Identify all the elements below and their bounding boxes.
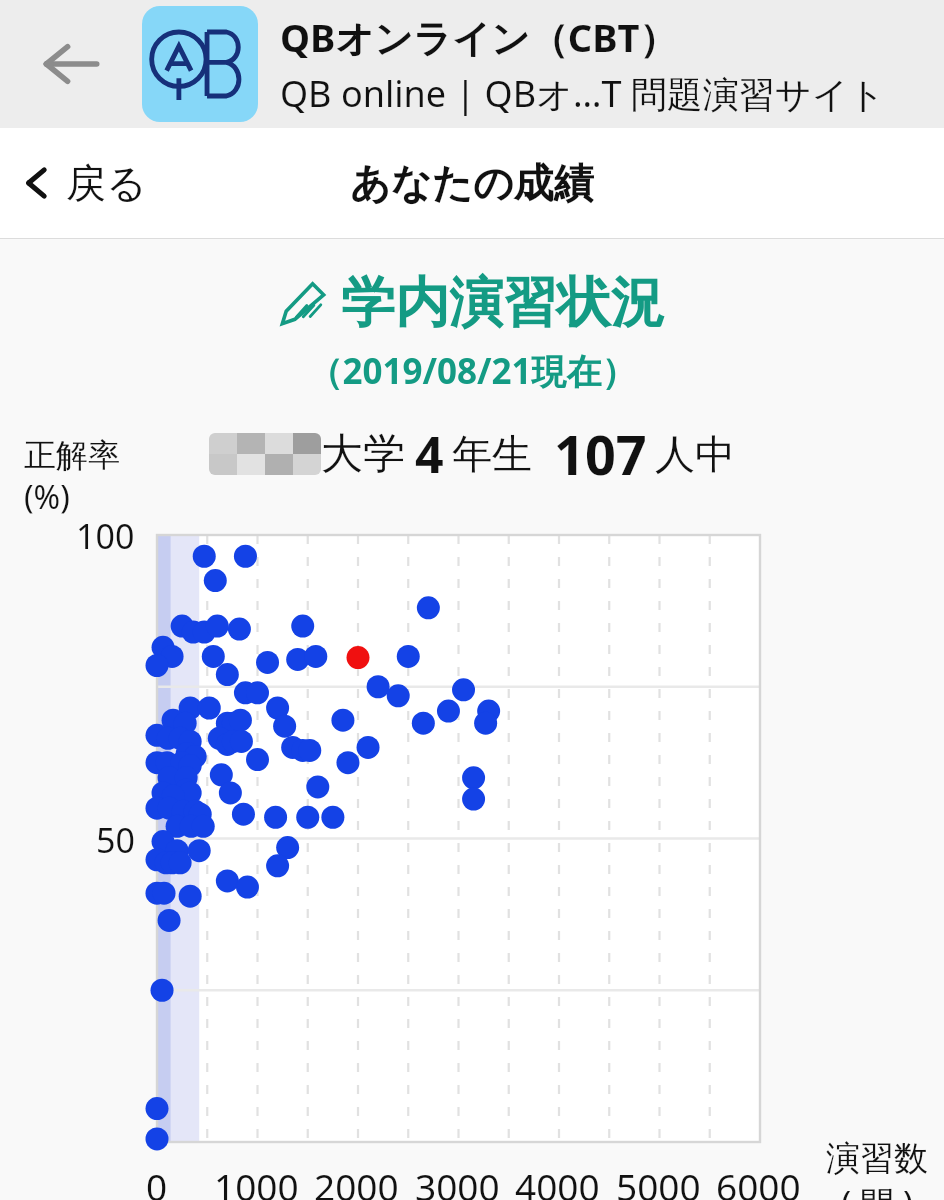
staticText: あなたの成績 [350, 158, 594, 208]
button[interactable]: 戻る [0, 128, 169, 238]
staticText: 50 [96, 817, 135, 863]
staticText: 4000 [515, 1161, 600, 1200]
staticText: 0 [146, 1161, 168, 1200]
staticText: 戻る [66, 158, 147, 208]
staticText: 2000 [314, 1161, 399, 1200]
staticText: 107 [554, 417, 647, 491]
staticText: 6000 [716, 1161, 801, 1200]
staticText: QB online | QBオ…T 問題演習サイト [280, 69, 886, 118]
staticText: 人中 [655, 429, 735, 479]
staticText: ( 問 ) [841, 1180, 914, 1200]
staticText: 100 [76, 513, 135, 559]
staticText: 大学 [321, 428, 405, 481]
staticText: 1000 [214, 1161, 299, 1200]
staticText: 学内演習状況 [341, 269, 665, 337]
staticText: 4 [415, 420, 444, 488]
staticText: (%) [24, 475, 70, 519]
staticText: （2019/08/21現在） [0, 347, 944, 395]
staticText: 年生 [452, 429, 532, 479]
staticText: 演習数 [826, 1137, 928, 1180]
button[interactable]: Back [0, 0, 142, 128]
staticText: QBオンライン（CBT） [280, 11, 678, 63]
staticText: 5000 [616, 1161, 701, 1200]
staticText: 正解率 [24, 435, 120, 475]
staticText: 3000 [415, 1161, 500, 1200]
